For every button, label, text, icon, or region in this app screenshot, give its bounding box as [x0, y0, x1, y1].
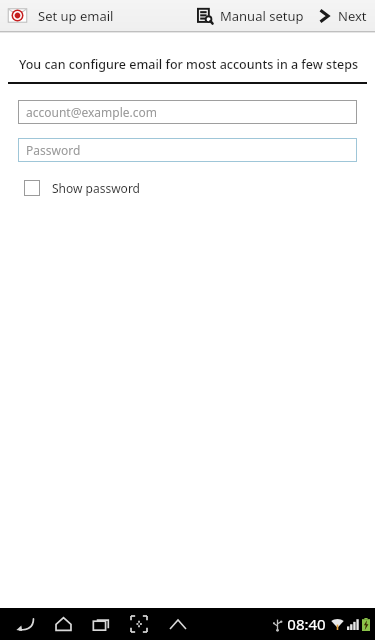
button[interactable]: Home: [44, 608, 82, 640]
staticText: Password: [26, 142, 81, 158]
other: Next: [316, 8, 332, 24]
button[interactable]: Back: [6, 608, 44, 640]
button[interactable]: Show password: [18, 176, 146, 200]
other: Wi-Fi: [331, 618, 344, 630]
staticText: Set up email: [38, 7, 114, 25]
button[interactable]: Email address: [18, 100, 357, 124]
other: Email app: [7, 5, 28, 26]
staticText: Show password: [52, 180, 140, 196]
button[interactable]: Next: [310, 0, 375, 31]
other: USB connected: [273, 618, 282, 631]
staticText: You can configure email for most account…: [19, 56, 358, 73]
staticText: Next: [338, 7, 367, 25]
button[interactable]: Email app: [0, 0, 124, 31]
button[interactable]: Show notifications: [160, 608, 196, 640]
button[interactable]: Manual setup: [191, 0, 310, 31]
button[interactable]: Password: [18, 138, 357, 162]
other: Mobile signal: [347, 618, 359, 630]
staticText: 08:40: [287, 614, 326, 634]
button[interactable]: Recent apps: [82, 608, 120, 640]
other: Battery charging: [362, 618, 370, 631]
staticText: account@example.com: [26, 104, 157, 120]
other: Manual setup: [197, 8, 213, 24]
staticText: Manual setup: [220, 7, 304, 25]
button[interactable]: Screenshot: [120, 608, 158, 640]
